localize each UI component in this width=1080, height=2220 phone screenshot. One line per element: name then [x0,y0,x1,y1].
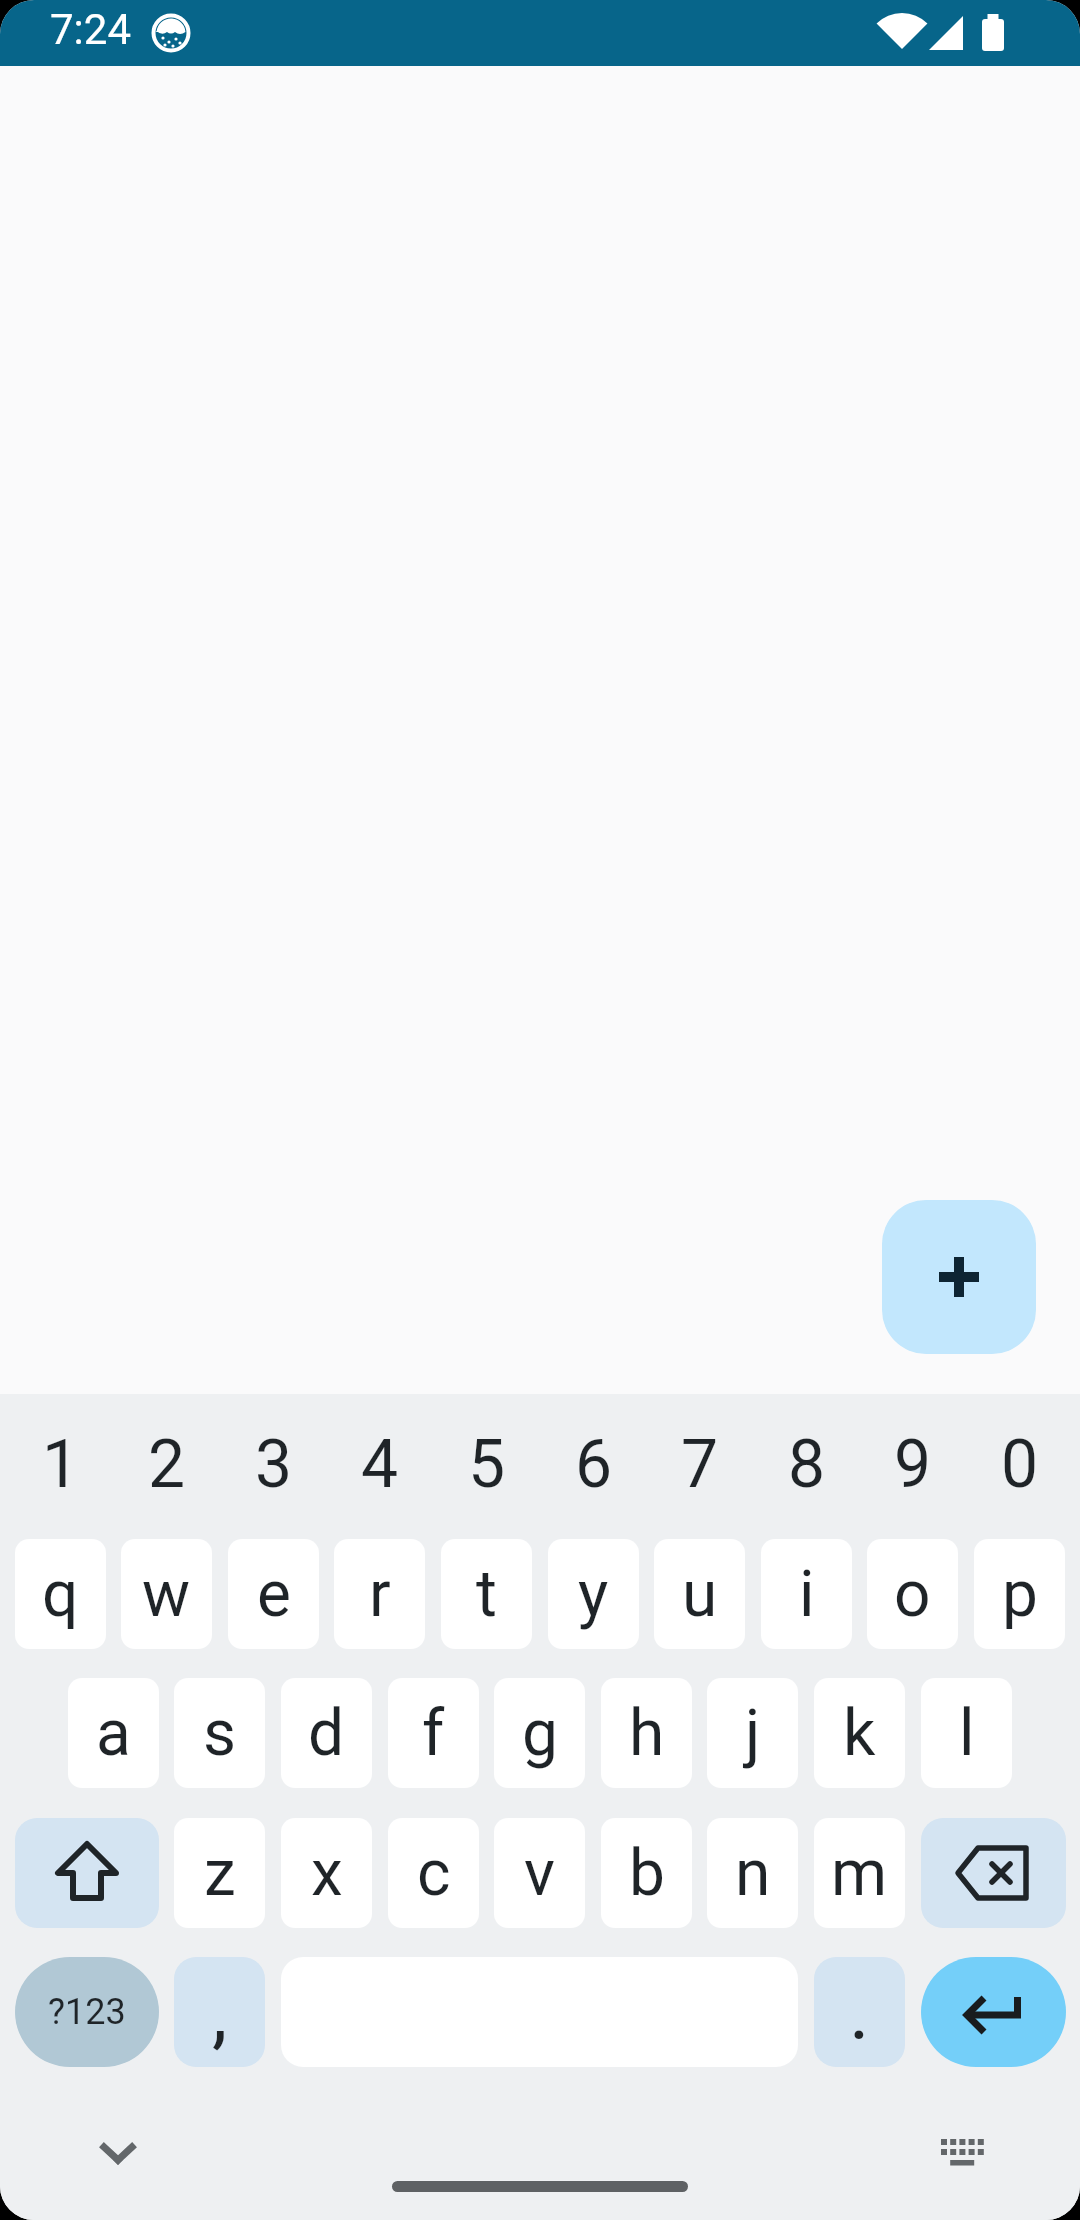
button[interactable]: f [388,1678,479,1788]
button[interactable] [88,2124,148,2184]
button[interactable]: m [814,1818,905,1928]
button[interactable]: g [494,1678,585,1788]
button[interactable]: e [228,1539,319,1649]
button[interactable]: 0 [974,1404,1065,1524]
staticText: u [682,1557,718,1632]
button[interactable]: i [761,1539,852,1649]
button[interactable]: j [707,1678,798,1788]
staticText: 5 [468,1426,506,1503]
button[interactable]: 1 [15,1404,106,1524]
staticText: 4 [361,1426,399,1503]
staticText: s [203,1696,237,1771]
button[interactable]: l [921,1678,1012,1788]
button[interactable]: . [814,1957,905,2067]
staticText: z [204,1836,236,1911]
button[interactable]: p [974,1539,1065,1649]
staticText: e [257,1557,291,1632]
staticText: w [142,1557,191,1632]
button[interactable]: s [174,1678,265,1788]
button[interactable]: k [814,1678,905,1788]
staticText: p [1002,1557,1038,1632]
button[interactable]: z [174,1818,265,1928]
staticText: m [831,1836,888,1911]
staticText: o [894,1557,931,1632]
button[interactable] [921,1818,1066,1928]
button[interactable]: w [121,1539,212,1649]
staticText: c [417,1836,451,1911]
button[interactable]: o [867,1539,958,1649]
button[interactable]: x [281,1818,372,1928]
button[interactable]: 7 [654,1404,745,1524]
button[interactable]: r [334,1539,425,1649]
button[interactable]: y [548,1539,639,1649]
button[interactable] [15,1818,159,1928]
button[interactable]: t [441,1539,532,1649]
staticText: 9 [894,1426,932,1503]
staticText: r [369,1557,391,1632]
staticText: 3 [255,1426,293,1503]
button[interactable]: d [281,1678,372,1788]
staticText: 0 [1001,1426,1039,1503]
staticText: n [735,1836,771,1911]
staticText: a [96,1696,131,1771]
staticText: . [849,1967,870,2058]
button[interactable] [921,1957,1066,2067]
staticText: 7:24 [50,5,131,54]
staticText: x [311,1836,343,1911]
button[interactable]: 4 [334,1404,425,1524]
staticText: l [959,1696,975,1771]
button[interactable]: b [601,1818,692,1928]
button[interactable]: u [654,1539,745,1649]
staticText: f [422,1696,445,1771]
staticText: 7 [681,1426,719,1503]
button[interactable]: c [388,1818,479,1928]
button[interactable]: 3 [228,1404,319,1524]
button[interactable]: ?123 [15,1957,159,2067]
button[interactable]: 5 [441,1404,532,1524]
staticText: d [308,1696,345,1771]
button[interactable] [882,1200,1036,1354]
staticText: ?123 [48,1991,126,2033]
button[interactable]: 6 [548,1404,639,1524]
staticText: q [42,1557,79,1632]
staticText: 8 [788,1426,826,1503]
staticText: h [629,1696,665,1771]
staticText: k [843,1696,876,1771]
button[interactable]: 2 [121,1404,212,1524]
staticText: t [476,1557,497,1632]
staticText: , [212,1967,228,2058]
staticText: g [522,1696,558,1771]
button[interactable]: h [601,1678,692,1788]
button[interactable]: n [707,1818,798,1928]
staticText: 2 [148,1426,186,1503]
staticText: y [578,1557,609,1632]
staticText: b [629,1836,665,1911]
button[interactable]: 9 [867,1404,958,1524]
button[interactable]: , [174,1957,265,2067]
staticText: 1 [42,1426,80,1503]
button[interactable]: q [15,1539,106,1649]
button[interactable]: v [494,1818,585,1928]
button[interactable]: 8 [761,1404,852,1524]
staticText: j [745,1696,761,1771]
button[interactable]: a [68,1678,159,1788]
staticText: v [524,1836,555,1911]
staticText: 6 [575,1426,613,1503]
staticText: i [799,1557,815,1632]
button[interactable] [933,2124,993,2184]
